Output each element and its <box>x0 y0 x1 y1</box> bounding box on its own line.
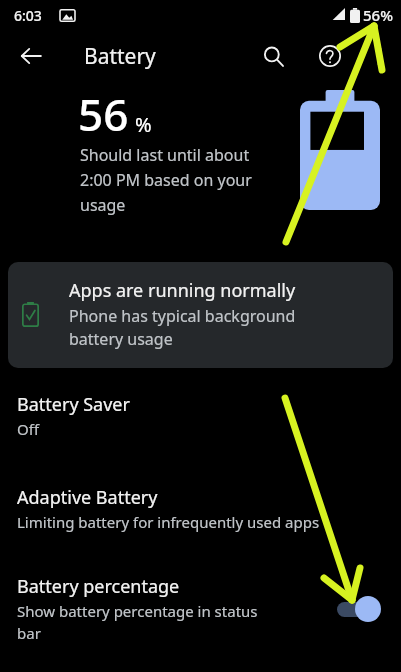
staticText: Battery percentage <box>17 574 180 599</box>
button[interactable]: Back <box>12 37 50 75</box>
staticText: Battery Saver <box>17 392 130 417</box>
staticText: Phone has typical background battery usa… <box>69 305 296 350</box>
button[interactable]: Battery percentage toggle <box>333 596 385 622</box>
staticText: Off <box>17 419 40 439</box>
staticText: Apps are running normally <box>69 278 296 303</box>
staticText: Adaptive Battery <box>17 485 158 510</box>
button[interactable]: Apps are running normally <box>8 262 393 368</box>
staticText: Limiting battery for infrequently used a… <box>17 512 320 532</box>
staticText: Should last until about 2:00 PM based on… <box>80 144 252 215</box>
staticText: Battery <box>84 42 156 71</box>
button[interactable]: Search <box>253 36 293 76</box>
button[interactable]: Battery percentage <box>0 574 401 644</box>
staticText: 56% <box>363 5 393 25</box>
staticText: % <box>135 111 152 138</box>
staticText: 6:03 <box>14 6 42 25</box>
button[interactable]: More options <box>360 37 398 75</box>
staticText: Show battery percentage in status bar <box>17 601 258 644</box>
button[interactable]: Adaptive Battery <box>0 485 401 532</box>
button[interactable]: Battery Saver <box>0 392 401 439</box>
staticText: 56 <box>78 84 129 144</box>
button[interactable]: Help <box>310 36 350 76</box>
